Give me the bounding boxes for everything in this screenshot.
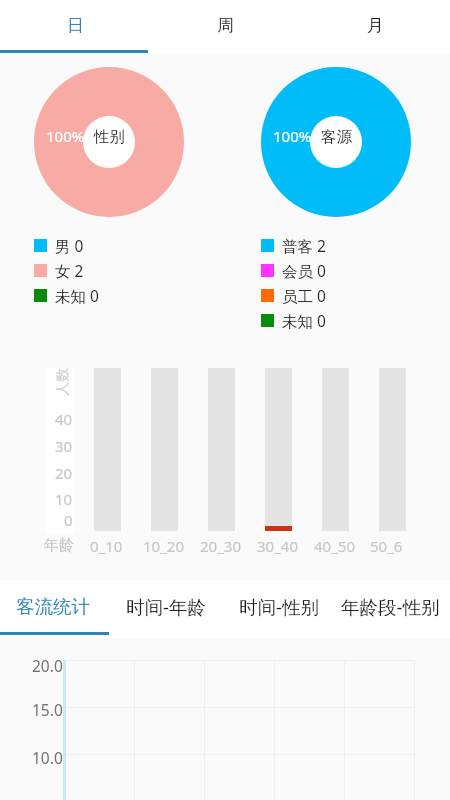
staticText: 10_20 bbox=[143, 536, 184, 556]
staticText: 30_40 bbox=[257, 536, 298, 556]
staticText: 30 bbox=[55, 436, 73, 456]
staticText: 100% bbox=[273, 126, 312, 146]
staticText: 未知 0 bbox=[282, 310, 326, 331]
staticText: 男 0 bbox=[55, 235, 84, 256]
staticText: 年龄段-性别 bbox=[341, 594, 440, 619]
staticText: 0 bbox=[64, 510, 73, 530]
staticText: 时间-年龄 bbox=[126, 594, 206, 619]
button[interactable]: 员工 0 bbox=[261, 283, 326, 308]
staticText: 人数 bbox=[54, 364, 72, 400]
staticText: 周 bbox=[217, 15, 234, 36]
button[interactable]: 男 0 bbox=[34, 233, 84, 258]
staticText: 性别 bbox=[94, 127, 125, 147]
staticText: 月 bbox=[367, 15, 384, 36]
staticText: 员工 0 bbox=[282, 285, 326, 306]
staticText: 20_30 bbox=[200, 536, 241, 556]
button[interactable]: 日 bbox=[0, 0, 150, 50]
staticText: 女 2 bbox=[55, 260, 84, 281]
staticText: 普客 2 bbox=[282, 235, 326, 256]
button[interactable]: 周 bbox=[150, 0, 300, 50]
staticText: 0_10 bbox=[90, 536, 123, 556]
staticText: 未知 0 bbox=[55, 285, 99, 306]
staticText: 15.0 bbox=[32, 699, 63, 720]
staticText: 日 bbox=[67, 15, 84, 36]
staticText: 40 bbox=[55, 409, 73, 429]
staticText: 100% bbox=[46, 126, 85, 146]
staticText: 会员 0 bbox=[282, 260, 326, 281]
staticText: 20 bbox=[55, 463, 73, 483]
staticText: 年龄 bbox=[44, 536, 74, 555]
button[interactable]: 月 bbox=[300, 0, 450, 50]
staticText: 50_6 bbox=[370, 536, 403, 556]
staticText: 客流统计 bbox=[16, 595, 90, 618]
button[interactable]: 女 2 bbox=[34, 258, 84, 283]
button[interactable]: 普客 2 bbox=[261, 233, 326, 258]
staticText: 40_50 bbox=[314, 536, 355, 556]
button[interactable]: 年龄段-性别 bbox=[335, 580, 446, 632]
staticText: 10 bbox=[55, 489, 73, 509]
button[interactable]: 未知 0 bbox=[261, 308, 326, 333]
button[interactable]: 时间-性别 bbox=[222, 580, 335, 632]
button[interactable]: 时间-年龄 bbox=[109, 580, 222, 632]
staticText: 10.0 bbox=[32, 747, 63, 768]
button[interactable]: 会员 0 bbox=[261, 258, 326, 283]
staticText: 客源 bbox=[321, 127, 352, 147]
button[interactable]: 未知 0 bbox=[34, 283, 99, 308]
button[interactable]: 客流统计 bbox=[0, 580, 109, 632]
staticText: 20.0 bbox=[32, 655, 63, 676]
staticText: 时间-性别 bbox=[239, 594, 319, 619]
